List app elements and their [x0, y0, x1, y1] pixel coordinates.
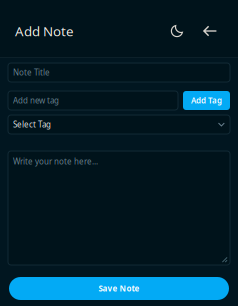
button[interactable]: Add Tag	[183, 91, 230, 110]
button[interactable]: Select Tag	[8, 115, 230, 134]
staticText: Add Tag	[191, 95, 222, 106]
button[interactable]: Back	[199, 20, 221, 42]
staticText: Select Tag	[13, 119, 51, 130]
staticText: Note Title	[13, 67, 50, 78]
staticText: Add Note	[15, 22, 74, 40]
button[interactable]: Save Note	[9, 277, 229, 300]
staticText: Write your note here...	[13, 156, 98, 167]
staticText: Add new tag	[13, 95, 59, 106]
staticText: Save Note	[98, 283, 139, 294]
button[interactable]: Toggle dark mode	[166, 20, 188, 42]
